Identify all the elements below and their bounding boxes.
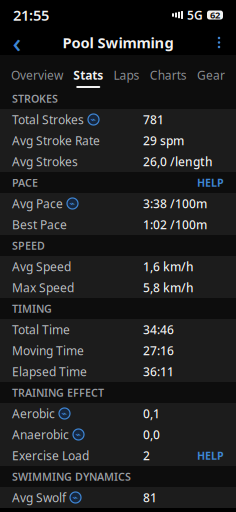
staticText: Overview xyxy=(11,67,63,83)
staticText: 62 xyxy=(210,9,220,21)
staticText: Gear xyxy=(197,67,225,83)
staticText: 3:38 /100m xyxy=(143,195,207,211)
staticText: ⌁ xyxy=(90,114,96,125)
staticText: TIMING xyxy=(12,301,52,316)
button[interactable]: Avg Strokes xyxy=(0,151,236,172)
staticText: 21:55 xyxy=(13,5,49,25)
staticText: Avg Strokes xyxy=(12,153,78,169)
staticText: HELP xyxy=(197,448,224,463)
button[interactable]: HELP xyxy=(197,175,224,190)
button[interactable]: Avg Pace xyxy=(0,193,236,214)
staticText: Stats xyxy=(73,67,103,83)
staticText: 781 xyxy=(143,111,164,127)
staticText: 2 xyxy=(143,447,150,463)
staticText: SWIMMING DYNAMICS xyxy=(12,469,131,484)
button[interactable]: Total Strokes xyxy=(0,109,236,130)
staticText: Total Strokes xyxy=(12,111,84,127)
staticText: Avg Swolf xyxy=(12,489,66,505)
button[interactable]: Elapsed Time xyxy=(0,361,236,382)
button[interactable]: Overview xyxy=(11,55,63,88)
staticText: 1,6 km/h xyxy=(143,258,194,274)
button[interactable]: Avg Swolf xyxy=(0,487,236,508)
staticText: Avg Stroke Rate xyxy=(12,132,100,148)
staticText: SPEED xyxy=(12,238,45,253)
staticText: Avg Pace xyxy=(12,195,63,211)
staticText: Total Time xyxy=(12,321,70,337)
button[interactable]: Gear xyxy=(197,55,225,88)
staticText: 34:46 xyxy=(143,321,174,337)
staticText: ‹ xyxy=(12,25,21,60)
staticText: Best Pace xyxy=(12,216,67,232)
staticText: 0,0 xyxy=(143,426,160,442)
staticText: 0,1 xyxy=(143,405,160,421)
staticText: STROKES xyxy=(12,91,58,106)
button[interactable]: Charts xyxy=(150,55,187,88)
staticText: Elapsed Time xyxy=(12,363,87,379)
staticText: 27:16 xyxy=(143,342,174,358)
button[interactable]: Avg Speed xyxy=(0,256,236,277)
staticText: 5,8 km/h xyxy=(143,279,194,295)
staticText: 81 xyxy=(143,489,157,505)
button[interactable]: Total Time xyxy=(0,319,236,340)
staticText: 29 spm xyxy=(143,132,184,148)
staticText: ⌁ xyxy=(72,492,78,503)
button[interactable]: Best Pace xyxy=(0,214,236,235)
staticText: Max Speed xyxy=(12,279,74,295)
button[interactable]: More options xyxy=(206,30,232,54)
staticText: Anaerobic xyxy=(12,426,69,442)
staticText: Avg Speed xyxy=(12,258,71,274)
button[interactable]: Anaerobic xyxy=(0,424,236,445)
staticText: 26,0 /length xyxy=(143,153,213,169)
staticText: ⌁ xyxy=(69,198,75,209)
staticText: Aerobic xyxy=(12,405,55,421)
button[interactable]: Back xyxy=(4,30,30,54)
staticText: HELP xyxy=(197,175,224,190)
button[interactable]: Max Speed xyxy=(0,277,236,298)
staticText: TRAINING EFFECT xyxy=(12,385,104,400)
staticText: Pool Swimming xyxy=(62,33,173,52)
staticText: PACE xyxy=(12,175,38,190)
staticText: Moving Time xyxy=(12,342,84,358)
staticText: Charts xyxy=(150,67,187,83)
staticText: ⌁ xyxy=(61,408,67,419)
staticText: Laps xyxy=(113,67,139,83)
button[interactable]: Aerobic xyxy=(0,403,236,424)
button[interactable]: Laps xyxy=(113,55,139,88)
staticText: ⌁ xyxy=(75,429,81,440)
button[interactable]: Exercise Load xyxy=(0,445,236,466)
staticText: Exercise Load xyxy=(12,447,89,463)
button[interactable]: Avg Stroke Rate xyxy=(0,130,236,151)
button[interactable]: Moving Time xyxy=(0,340,236,361)
staticText: 36:11 xyxy=(143,363,174,379)
staticText: 1:02 /100m xyxy=(143,216,207,232)
button[interactable]: Stats xyxy=(73,55,103,88)
staticText: 5G xyxy=(187,7,203,23)
